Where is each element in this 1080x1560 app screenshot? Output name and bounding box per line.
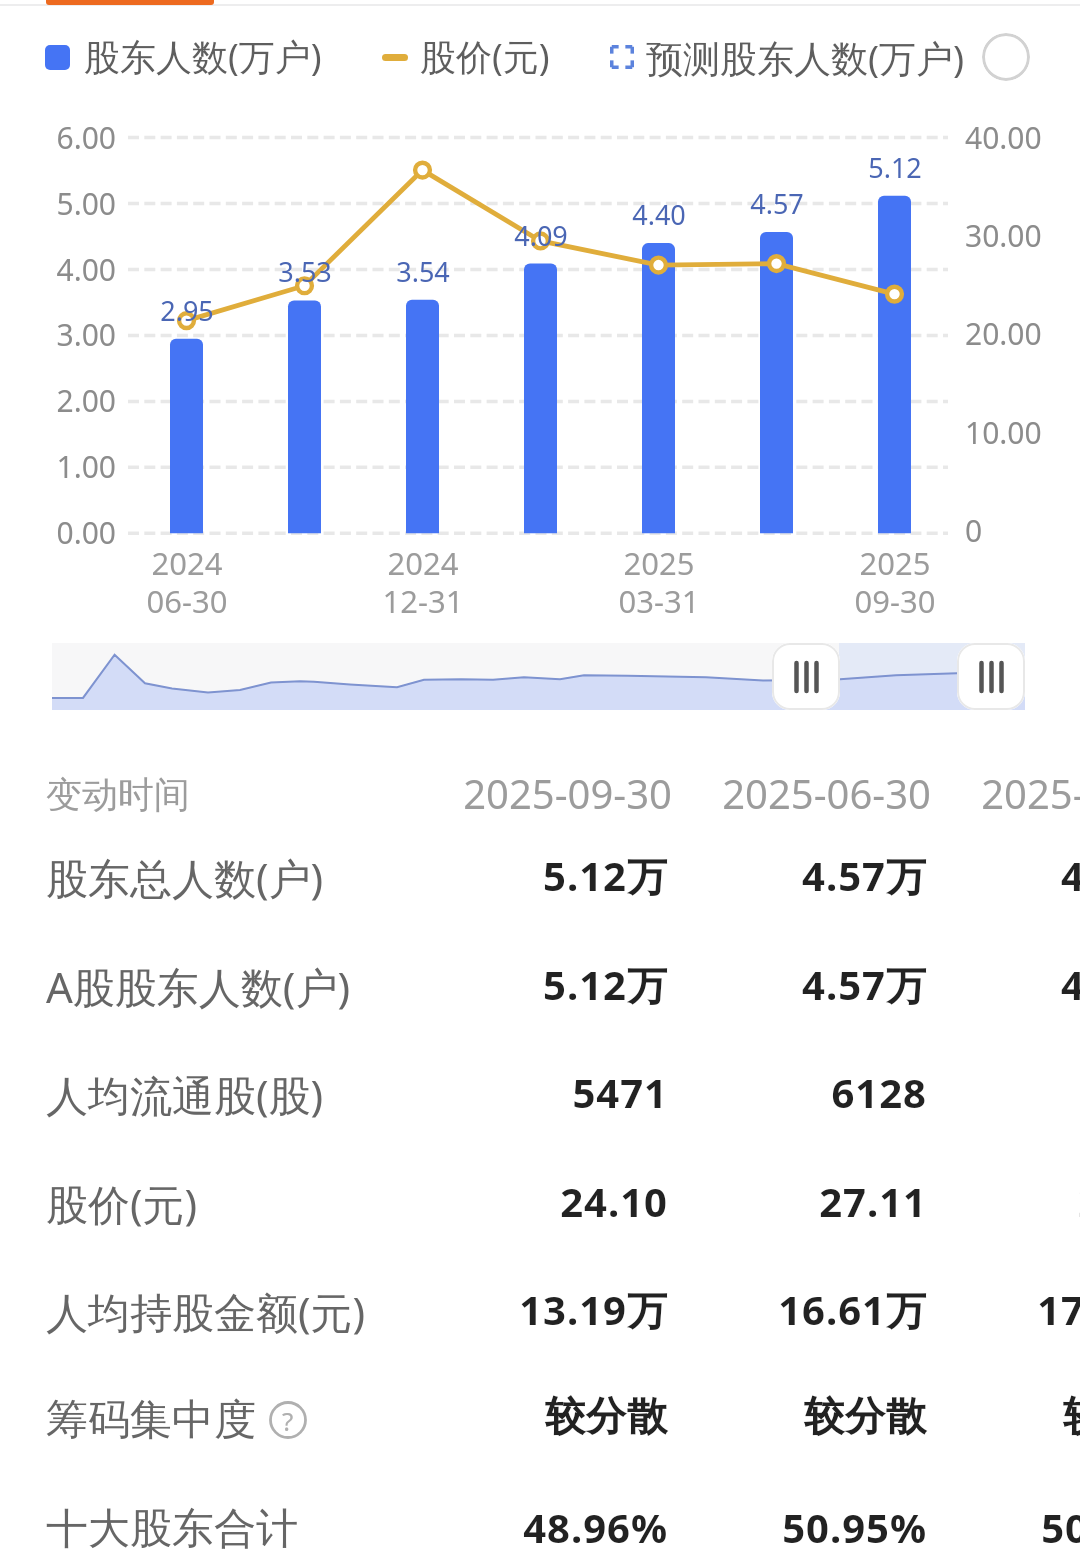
staticText: 40.00 (965, 117, 1042, 158)
staticText: 3.54 (363, 253, 483, 290)
button[interactable]: 人均持股金额(元) (46, 1279, 366, 1343)
staticText: 50.12% (856, 1500, 1080, 1554)
staticText: 09-30 (815, 580, 975, 622)
staticText: 5.12万 (338, 957, 668, 1012)
button[interactable]: 股东人数(万户) (45, 33, 322, 81)
staticText: 16.61万 (597, 1282, 927, 1337)
staticText: 4.09 (481, 217, 601, 254)
staticText: 5471 (338, 1065, 668, 1119)
staticText: 3.53 (245, 253, 365, 290)
staticText: 0 (965, 510, 983, 551)
button[interactable]: 股价(元) (382, 33, 550, 81)
staticText: 2025 (815, 542, 975, 584)
staticText: 人均流通股(股) (46, 1066, 324, 1123)
staticText: 20.00 (965, 313, 1042, 354)
staticText: 4.40万 (856, 957, 1080, 1012)
staticText: 6372 (856, 1065, 1080, 1119)
staticText: 4.57万 (597, 848, 927, 903)
button[interactable]: 十大股东合计 (46, 1497, 298, 1560)
staticText: 股价(元) (46, 1175, 198, 1232)
button[interactable]: 筹码集中度 (46, 1388, 307, 1452)
staticText: 4.00 (16, 249, 116, 290)
staticText: 17.33万 (856, 1282, 1080, 1337)
staticText: 筹码集中度 (46, 1394, 256, 1447)
button[interactable]: 人均流通股(股) (46, 1062, 324, 1126)
staticText: 股东总人数(户) (46, 849, 324, 906)
staticText: 5.12万 (338, 848, 668, 903)
staticText: 12-31 (343, 580, 503, 622)
staticText: 2025-09-30 (342, 766, 672, 820)
staticText: 6.00 (16, 117, 116, 158)
staticText: 4.40万 (856, 848, 1080, 903)
staticText: 2025-06-30 (601, 766, 931, 820)
staticText: 十大股东合计 (46, 1503, 298, 1556)
button[interactable]: Drag handle (772, 643, 840, 710)
staticText: 50.95% (597, 1500, 927, 1554)
button[interactable]: 预测股东人数(万户) (610, 33, 965, 81)
staticText: 5.12 (835, 149, 955, 186)
button[interactable] (46, 0, 214, 5)
staticText: 较分散 (338, 1391, 668, 1441)
staticText: 2025 (579, 542, 739, 584)
staticText: 2025-03-31 (860, 766, 1080, 820)
button[interactable]: A股股东人数(户) (46, 954, 351, 1018)
button[interactable]: Drag handle (957, 643, 1025, 710)
staticText: 48.96% (338, 1500, 668, 1554)
staticText: 变动时间 (46, 772, 190, 817)
staticText: A股股东人数(户) (46, 958, 351, 1015)
staticText: 3.00 (16, 314, 116, 355)
staticText: 27.20 (856, 1174, 1080, 1228)
staticText: 03-31 (579, 580, 739, 622)
staticText: 人均持股金额(元) (46, 1283, 366, 1340)
staticText: 24.10 (338, 1174, 668, 1228)
staticText: 4.57 (717, 185, 837, 222)
staticText: 4.57万 (597, 957, 927, 1012)
staticText: 2.95 (127, 292, 247, 329)
staticText: 2024 (107, 542, 267, 584)
staticText: 预测股东人数(万户) (646, 32, 965, 80)
staticText: 较分散 (597, 1391, 927, 1441)
button[interactable]: 股东总人数(户) (46, 845, 324, 909)
staticText: 4.40 (599, 196, 719, 233)
staticText: 13.19万 (338, 1282, 668, 1337)
button[interactable]: More chart options (982, 33, 1030, 81)
staticText: 06-30 (107, 580, 267, 622)
staticText: 30.00 (965, 215, 1042, 256)
staticText: 2.00 (16, 380, 116, 421)
staticText: 较分散 (856, 1391, 1080, 1441)
staticText: ? (282, 1403, 294, 1438)
button[interactable]: 股价(元) (46, 1171, 198, 1235)
staticText: 27.11 (597, 1174, 927, 1228)
staticText: 0.00 (16, 512, 116, 553)
staticText: 1.00 (16, 446, 116, 487)
staticText: 6128 (597, 1065, 927, 1119)
staticText: 5.00 (16, 183, 116, 224)
staticText: 2024 (343, 542, 503, 584)
staticText: 股价(元) (420, 32, 550, 80)
staticText: 股东人数(万户) (84, 32, 322, 80)
staticText: 10.00 (965, 412, 1042, 453)
